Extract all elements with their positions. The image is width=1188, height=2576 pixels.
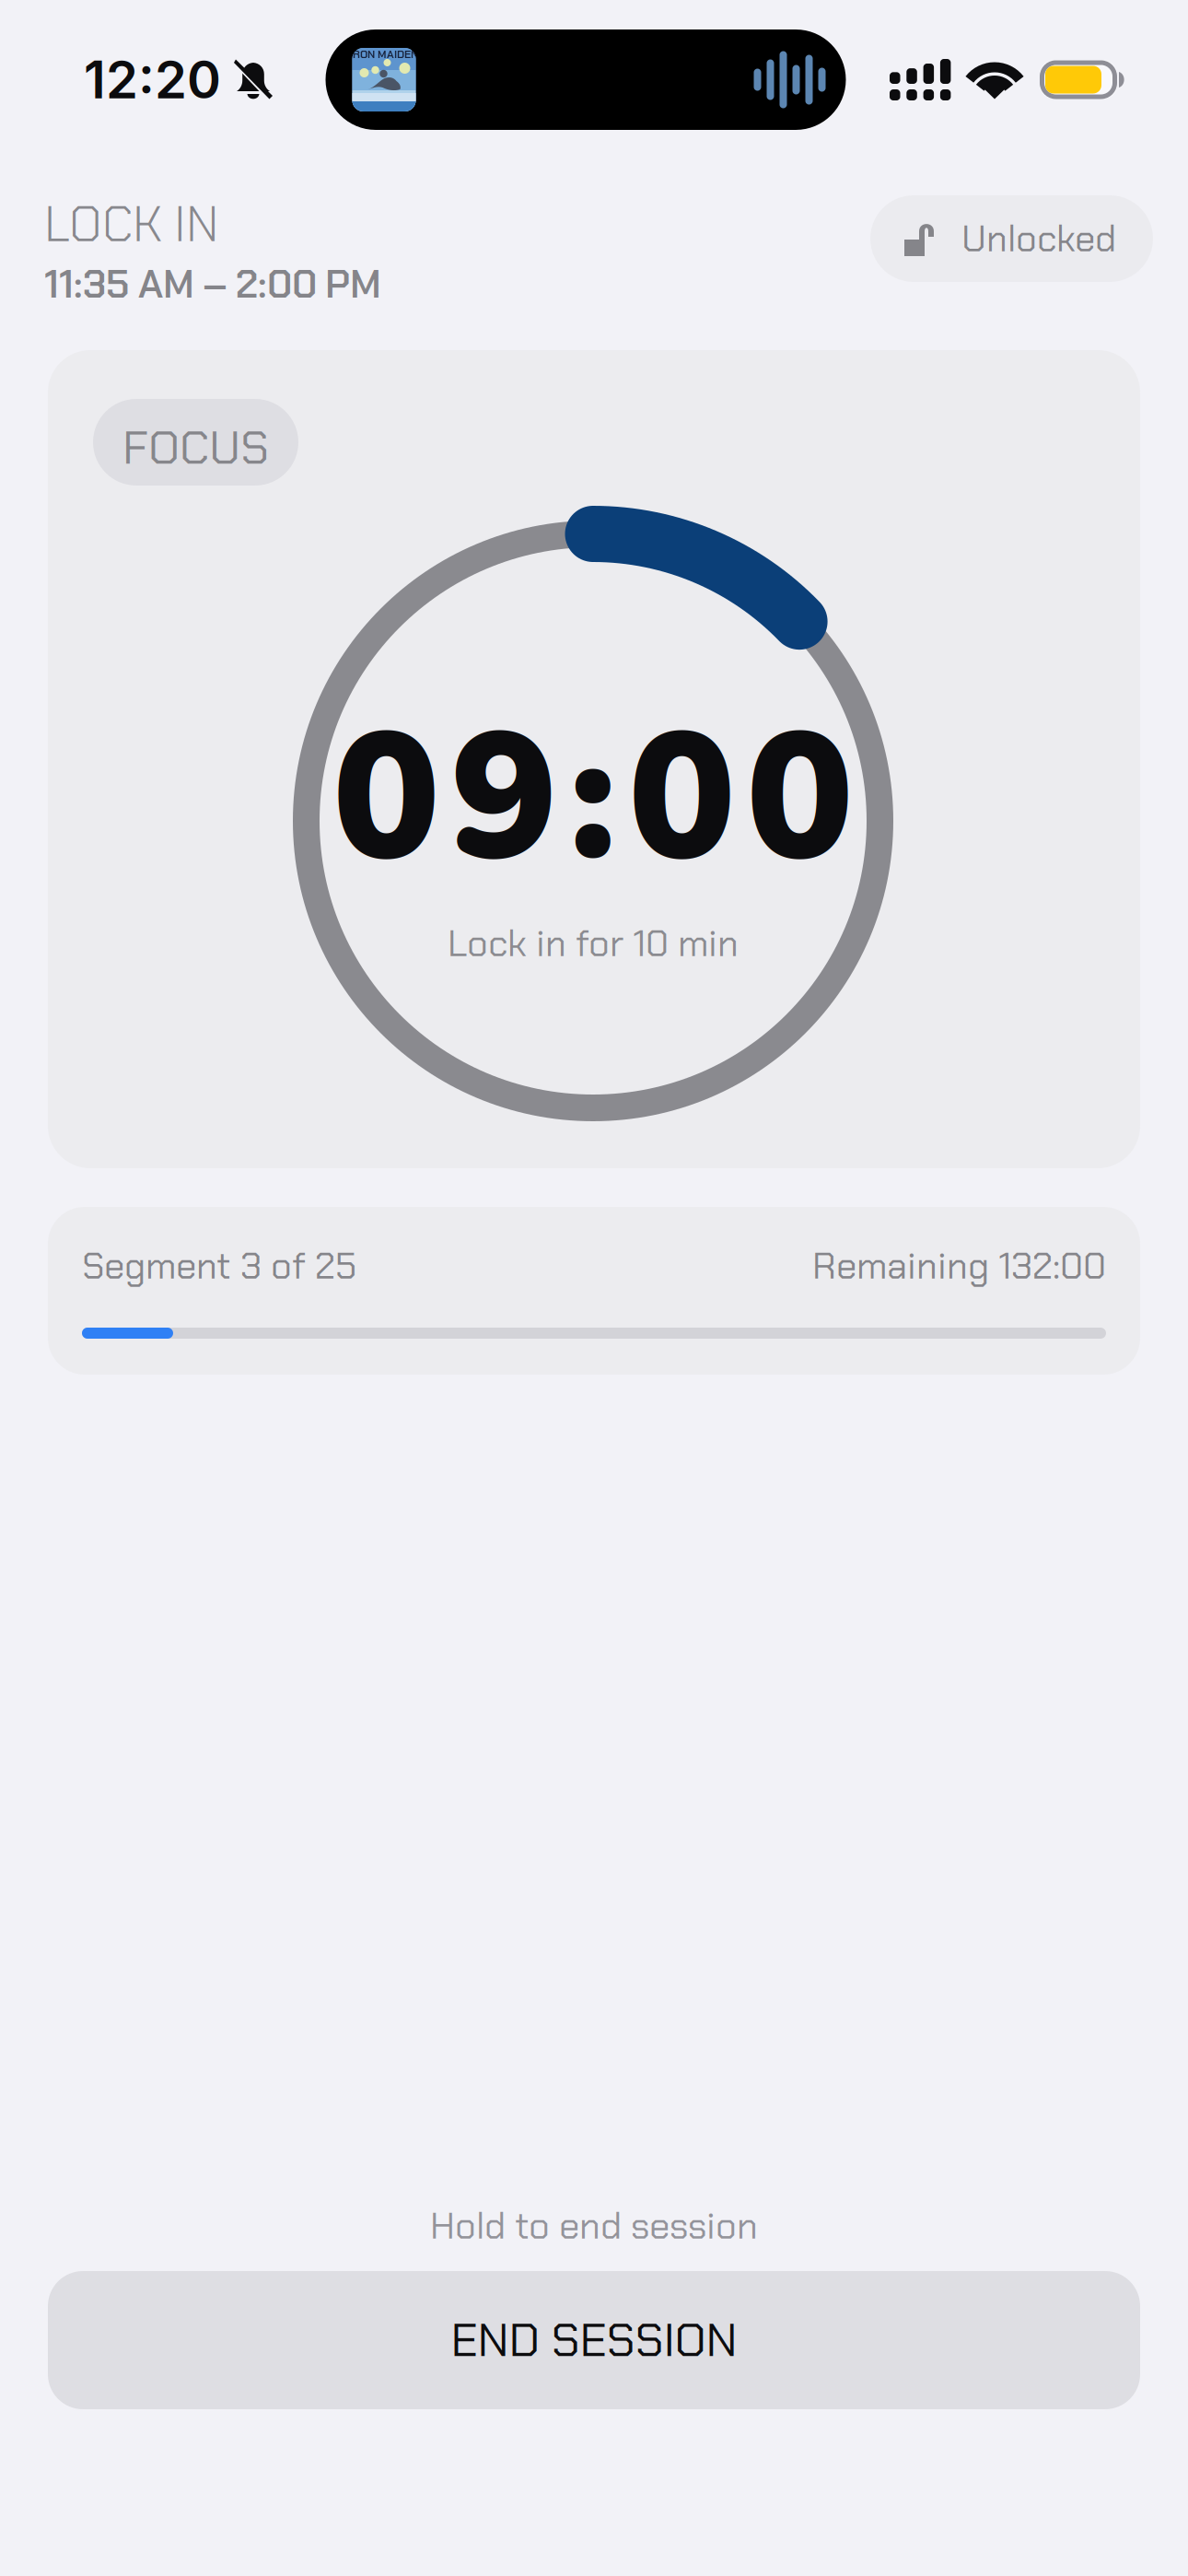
staticText: Remaining 132:00 xyxy=(812,1242,1106,1290)
staticText: 09:00 xyxy=(333,677,853,920)
staticText: IRON MAIDEN xyxy=(350,47,418,62)
staticText: Unlocked xyxy=(961,215,1116,263)
staticText: 11:35 AM – 2:00 PM xyxy=(44,259,381,310)
staticText: LOCK IN xyxy=(44,192,218,256)
staticText: FOCUS xyxy=(122,417,269,478)
button[interactable]: Unlocked xyxy=(870,195,1153,282)
staticText: 12:20 xyxy=(84,48,221,111)
staticText: Segment 3 of 25 xyxy=(82,1242,356,1290)
staticText: Lock in for 10 min xyxy=(448,919,739,967)
staticText: END SESSION xyxy=(451,2310,737,2371)
staticText: Hold to end session xyxy=(430,2202,758,2250)
button[interactable]: END SESSION xyxy=(48,2271,1140,2409)
